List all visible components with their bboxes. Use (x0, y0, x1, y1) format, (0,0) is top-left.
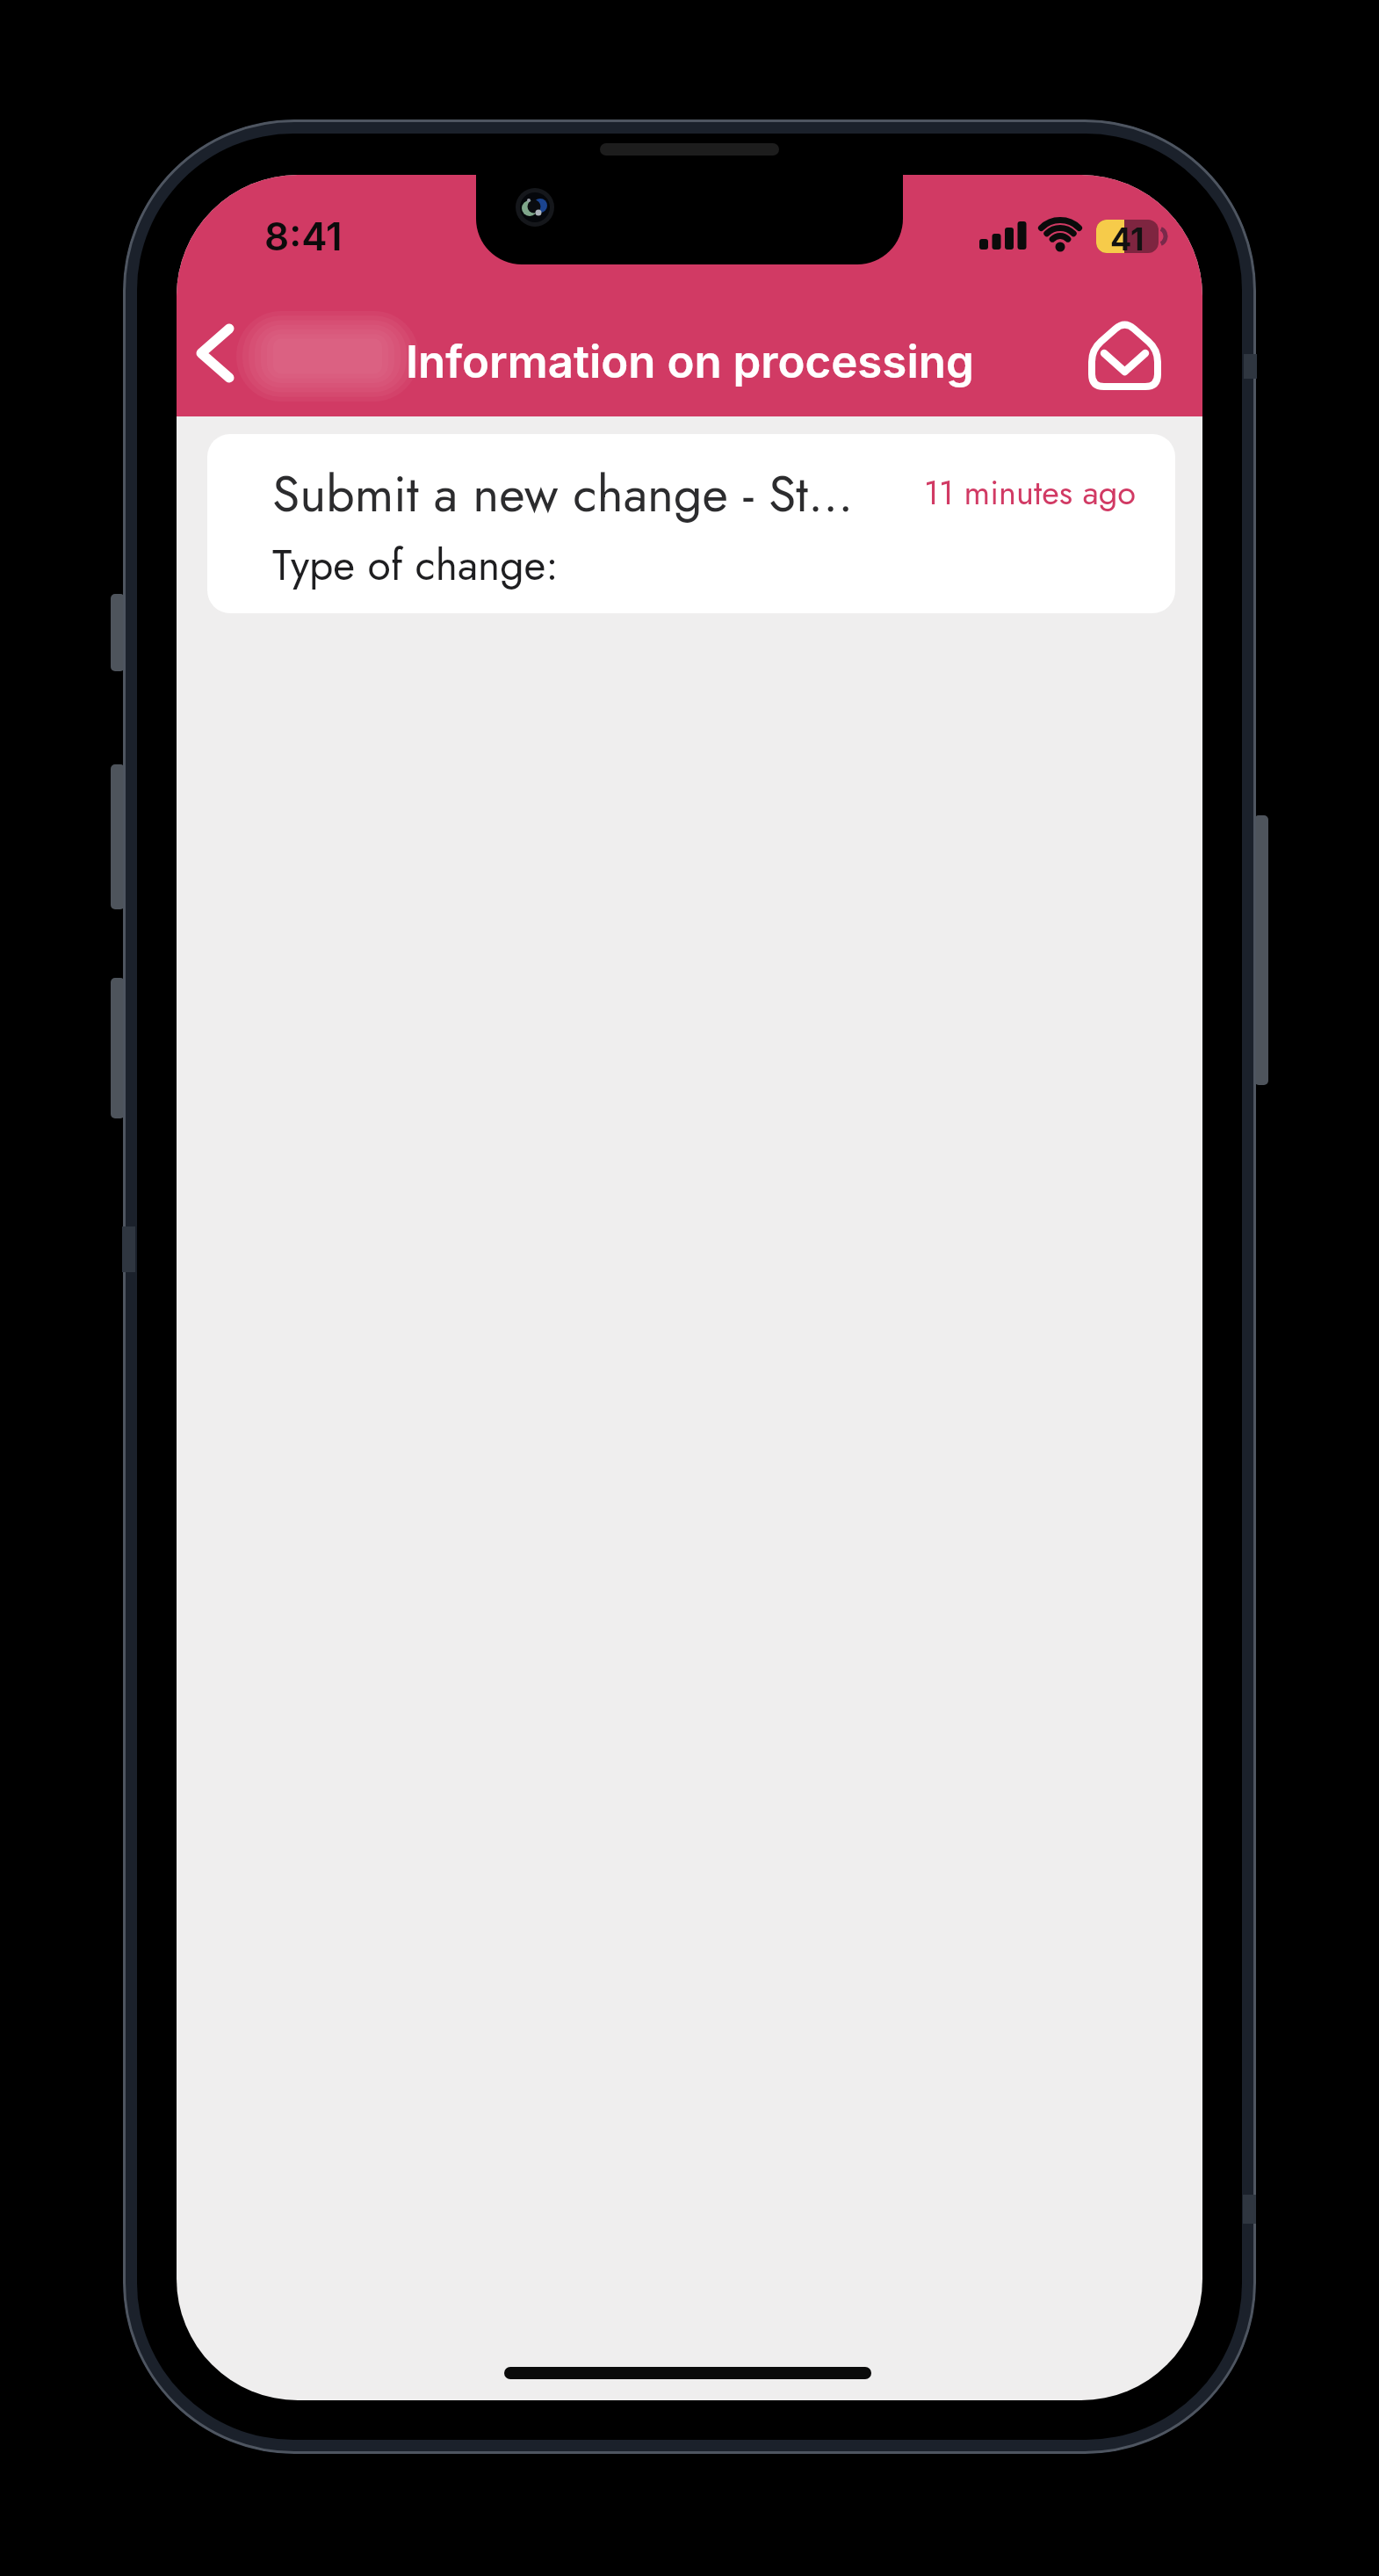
button[interactable] (184, 314, 271, 398)
staticText: 8:41 (264, 213, 343, 259)
button[interactable] (1074, 303, 1176, 405)
staticText: Type of change: (272, 535, 559, 596)
staticText: Information on processing (406, 335, 974, 389)
staticText: 11 minutes ago (924, 468, 1137, 517)
staticText: 41 (1110, 220, 1144, 253)
staticText: Submit a new change - St… (272, 458, 854, 530)
button[interactable]: Submit a new change - St… (207, 434, 1175, 613)
